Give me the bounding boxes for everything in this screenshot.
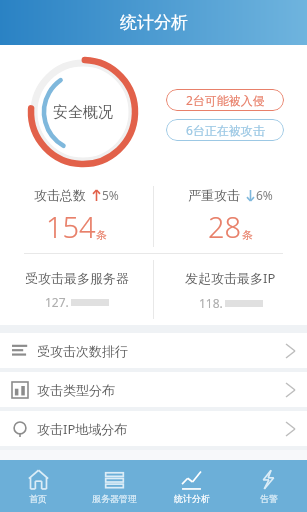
button[interactable]: 6台正在被攻击: [166, 119, 284, 141]
button[interactable]: 攻击IP地域分布: [0, 411, 307, 446]
staticText: 2台可能被入侵: [186, 92, 265, 108]
staticText: 受攻击最多服务器: [25, 270, 129, 286]
staticText: 攻击总数: [34, 187, 86, 203]
button[interactable]: 告警: [230, 460, 307, 512]
staticText: 154: [46, 207, 96, 246]
button[interactable]: 首页: [0, 460, 76, 512]
staticText: 6%: [256, 187, 273, 203]
button[interactable]: 统计分析: [153, 460, 230, 512]
button[interactable]: 攻击类型分布: [0, 372, 307, 407]
staticText: 严重攻击: [188, 187, 240, 203]
staticText: 28: [208, 207, 242, 246]
staticText: 告警: [260, 493, 278, 504]
staticText: 118.: [199, 295, 223, 311]
staticText: 5%: [102, 187, 119, 203]
staticText: 攻击IP地域分布: [37, 420, 128, 438]
staticText: 受攻击次数排行: [37, 343, 128, 359]
staticText: 安全概况: [53, 103, 113, 122]
staticText: 统计分析: [174, 493, 210, 504]
staticText: 6台正在被攻击: [186, 122, 265, 138]
staticText: 服务器管理: [92, 493, 137, 504]
staticText: 统计分析: [120, 12, 188, 33]
button[interactable]: 2台可能被入侵: [166, 89, 284, 111]
staticText: 127.: [45, 294, 69, 310]
button[interactable]: 受攻击次数排行: [0, 333, 307, 368]
staticText: 条: [242, 228, 253, 242]
staticText: 攻击类型分布: [37, 382, 115, 398]
staticText: 发起攻击最多IP: [185, 269, 276, 287]
staticText: 首页: [29, 493, 47, 504]
staticText: 条: [96, 228, 107, 242]
button[interactable]: 服务器管理: [76, 460, 153, 512]
